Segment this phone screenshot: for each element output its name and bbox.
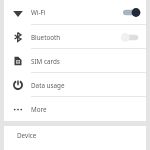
button[interactable]: On [121,7,141,18]
other: Wi-Fi [13,8,23,18]
staticText: Device [17,131,37,140]
button[interactable]: Off [121,32,141,43]
other: SIM cards [13,56,23,66]
staticText: Wi-Fi [31,8,46,17]
other: Bluetooth [13,32,23,42]
button[interactable]: Data usage [4,73,146,97]
staticText: SIM cards [31,57,60,66]
button[interactable]: More [4,97,146,121]
button[interactable]: SIM cards [4,49,146,73]
staticText: Data usage [31,81,65,90]
button[interactable]: Wi-Fi [4,0,146,25]
staticText: More [31,105,47,114]
button[interactable]: Bluetooth [4,25,146,49]
other: More [13,104,23,114]
other: Data usage [13,80,23,90]
staticText: Bluetooth [31,33,61,42]
